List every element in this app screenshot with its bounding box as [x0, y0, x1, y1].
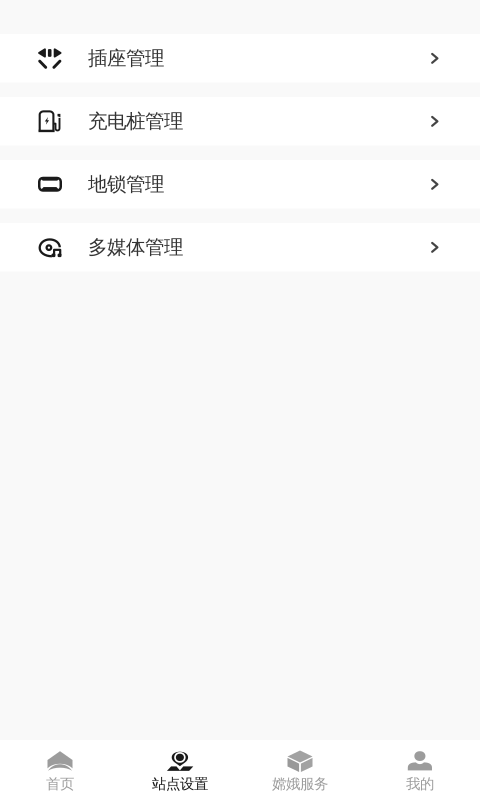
staticText: 充电桩管理 [88, 109, 183, 133]
button[interactable]: 充电桩管理 [0, 97, 480, 145]
button[interactable]: 插座管理 [0, 34, 480, 82]
staticText: 我的 [406, 775, 434, 793]
button[interactable]: 首页 [0, 740, 120, 800]
staticText: 插座管理 [88, 46, 164, 70]
button[interactable]: 我的 [360, 740, 480, 800]
button[interactable]: 多媒体管理 [0, 223, 480, 271]
button[interactable]: 站点设置 [120, 740, 240, 800]
staticText: 站点设置 [152, 775, 208, 793]
staticText: 首页 [46, 775, 74, 793]
button[interactable]: 嫦娥服务 [240, 740, 360, 800]
staticText: 嫦娥服务 [272, 775, 328, 793]
staticText: 多媒体管理 [88, 235, 183, 259]
staticText: 地锁管理 [88, 172, 164, 196]
button[interactable]: 地锁管理 [0, 160, 480, 208]
